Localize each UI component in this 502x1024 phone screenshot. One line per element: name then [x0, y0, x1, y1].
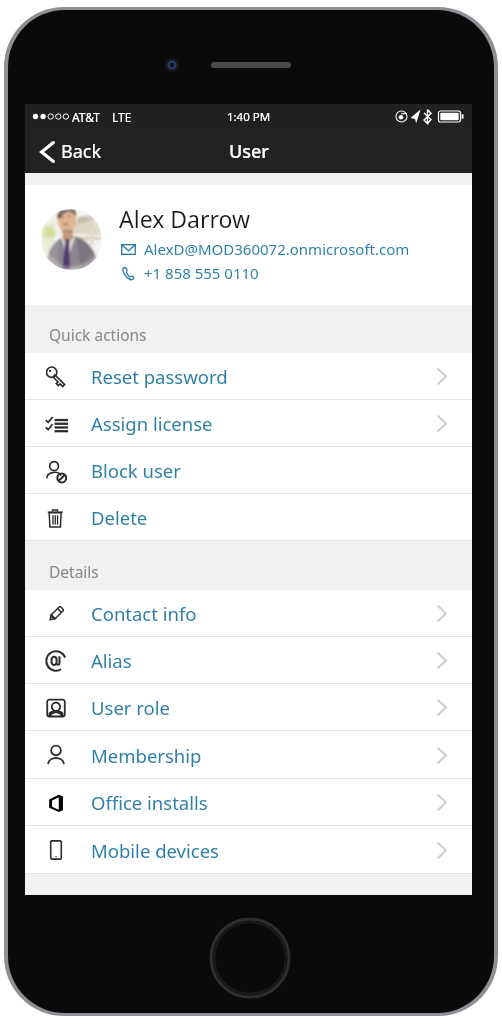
staticText: User role	[91, 695, 170, 720]
staticText: Block user	[91, 458, 181, 483]
staticText: Alias	[91, 648, 132, 673]
staticText: 1:40 PM	[25, 109, 472, 125]
staticText: Alex Darrow	[119, 203, 251, 234]
staticText: Office installs	[91, 790, 208, 815]
button[interactable]: Mobile devices	[25, 826, 472, 874]
button[interactable]: Office installs	[25, 779, 472, 826]
button[interactable]: Assign license	[25, 400, 472, 447]
button[interactable]: Block user	[25, 447, 472, 494]
staticText: Membership	[91, 743, 202, 768]
button[interactable]: Delete	[25, 494, 472, 541]
staticText: AT&T	[72, 109, 100, 125]
staticText: Reset password	[91, 364, 228, 389]
staticText: Contact info	[91, 601, 197, 626]
button[interactable]: Contact info	[25, 590, 472, 637]
staticText: +1 858 555 0110	[144, 263, 259, 283]
button[interactable]: User role	[25, 684, 472, 731]
staticText: Back	[61, 139, 102, 164]
staticText: Assign license	[91, 411, 213, 436]
staticText: LTE	[112, 109, 132, 125]
button[interactable]: Membership	[25, 731, 472, 779]
button[interactable]: Reset password	[25, 353, 472, 400]
staticText: Quick actions	[49, 324, 147, 345]
staticText: AlexD@MOD360072.onmicrosoft.com	[144, 239, 410, 259]
staticText: Mobile devices	[91, 838, 219, 863]
button[interactable]: Back	[25, 133, 114, 170]
staticText: Details	[49, 561, 99, 582]
staticText: Delete	[91, 505, 148, 530]
button[interactable]: Alias	[25, 637, 472, 684]
staticText: User	[229, 139, 269, 164]
